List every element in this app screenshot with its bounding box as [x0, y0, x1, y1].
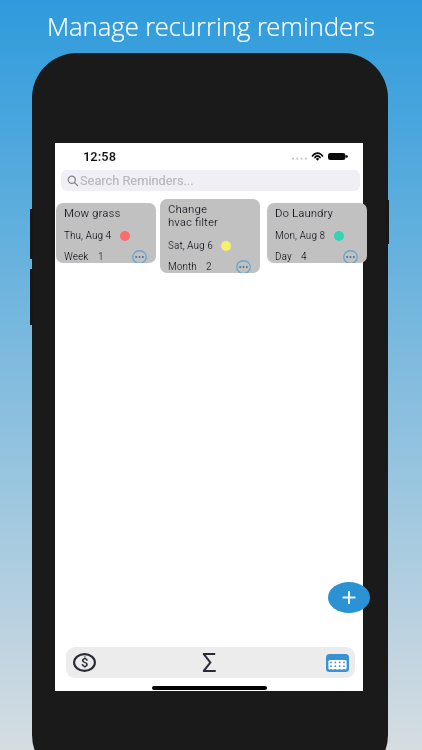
- button[interactable]: Calendar: [309, 647, 355, 678]
- staticText: Thu, Aug 4: [64, 230, 112, 242]
- staticText: Day: [275, 251, 292, 263]
- button[interactable]: More options: [132, 250, 147, 263]
- button[interactable]: More options: [343, 250, 358, 263]
- button[interactable]: More options: [236, 260, 251, 273]
- staticText: Manage recurring reminders: [0, 9, 422, 44]
- button[interactable]: Search Reminders...: [61, 170, 360, 191]
- button[interactable]: Budget: [66, 647, 102, 678]
- staticText: 4: [301, 251, 307, 263]
- button[interactable]: Do Laundry: [267, 203, 367, 263]
- staticText: Month: [168, 261, 197, 273]
- staticText: $: [81, 655, 89, 670]
- staticText: Search Reminders...: [80, 173, 194, 188]
- staticText: Do Laundry: [275, 206, 334, 219]
- staticText: 2: [206, 261, 212, 273]
- staticText: 1: [98, 251, 104, 263]
- staticText: Mon, Aug 8: [275, 230, 326, 242]
- button[interactable]: Change: [160, 199, 260, 273]
- button[interactable]: Mow grass: [56, 203, 156, 263]
- staticText: 12:58: [83, 149, 116, 164]
- staticText: Mow grass: [64, 206, 121, 219]
- staticText: Week: [64, 251, 89, 263]
- staticText: hvac filter: [168, 215, 218, 228]
- staticText: Change: [168, 202, 207, 215]
- button[interactable]: Totals: [181, 647, 238, 678]
- staticText: Σ: [202, 648, 217, 678]
- staticText: Sat, Aug 6: [168, 240, 213, 252]
- button[interactable]: Add reminder: [328, 582, 370, 613]
